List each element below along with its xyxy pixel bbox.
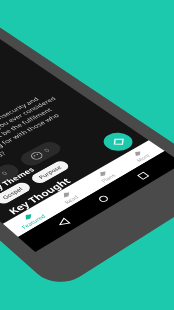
staticText: Key Thought [5, 175, 74, 217]
staticText: Plans [100, 172, 118, 184]
staticText: More [135, 153, 152, 163]
button[interactable]: Purpose [29, 159, 71, 185]
button[interactable]: 0 [0, 162, 23, 192]
staticText: Purpose [37, 164, 64, 180]
button[interactable]: Home [93, 192, 114, 206]
button[interactable]: More [115, 140, 165, 171]
button[interactable]: 0 [17, 139, 65, 168]
button[interactable]: Compose note [98, 129, 138, 155]
staticText: Key Themes [0, 165, 36, 196]
button[interactable]: Featured [3, 201, 57, 237]
button[interactable]: Gospel [0, 180, 33, 206]
staticText: Is there a mournful insecurity and empti… [0, 90, 82, 177]
staticText: Featured [20, 213, 48, 231]
staticText: 0 [0, 170, 10, 177]
button[interactable]: Recents [132, 169, 153, 183]
staticText: Read [63, 194, 81, 205]
staticText: 0 [42, 147, 53, 154]
staticText: Gospel [0, 185, 25, 201]
button[interactable]: Back [52, 215, 74, 230]
button[interactable]: Plans [79, 160, 130, 192]
button[interactable]: Read [42, 180, 95, 214]
